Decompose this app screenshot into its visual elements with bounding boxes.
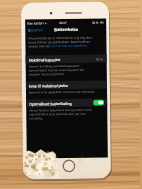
staticText: sammenlignet med ny. Lavere kapasitet ka… (29, 68, 85, 72)
button[interactable]: Maksimal kapasitet (26, 54, 107, 63)
staticText: Batteriet er for øyeblikket i stand til … (29, 90, 95, 94)
staticText: Evne til maksimal ytelse (29, 83, 69, 88)
button[interactable]: Evne til maksimal ytelse (26, 80, 107, 89)
staticText: 90 % (96, 56, 104, 61)
staticText: endres over tid. (28, 44, 51, 48)
staticText: lade forbi 80 % til du må bruke den. Lær… (29, 112, 86, 116)
button[interactable]: Optimalisert batterilading (26, 98, 107, 107)
staticText: Finn ut mer om batterier… (51, 44, 88, 48)
staticText: Batteri (31, 27, 43, 32)
button[interactable]: Home (62, 159, 76, 173)
staticText: om lading. (29, 116, 43, 120)
button[interactable]: endres over tid. (28, 44, 88, 48)
staticText: beste ytelsen og opplevelsen. Batteriyte… (28, 40, 90, 44)
staticText: Dette er en måling av batterikapasiteten (29, 64, 80, 68)
staticText: Maksimal kapasitet (29, 57, 61, 62)
button[interactable]: Batteri (27, 27, 43, 32)
staticText: Batterihelse (54, 27, 78, 32)
staticText: iPhone-batterier er utformet for å gi de… (28, 36, 92, 40)
staticText: resultere i kortere batteritid. (29, 72, 65, 76)
staticText: 09:27 (59, 21, 67, 25)
staticText: iPhone forutser ladevanene dine og vente… (29, 108, 92, 112)
staticText: 84 % (92, 21, 99, 25)
staticText: Ikke forstyrr (27, 21, 44, 25)
staticText: Optimalisert batterilading (29, 101, 72, 106)
